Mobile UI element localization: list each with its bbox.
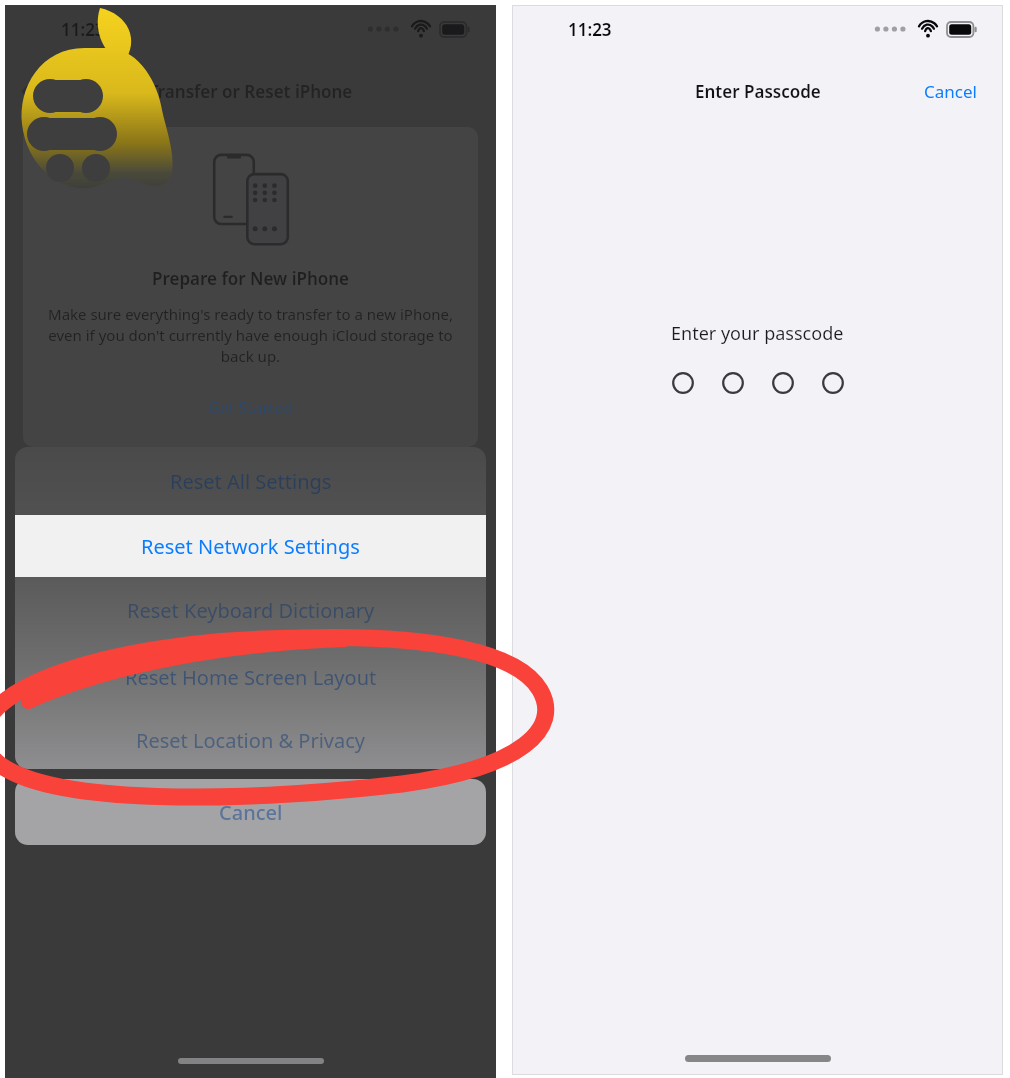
button[interactable]: Prepare for New iPhone <box>23 127 478 447</box>
staticText: Make sure everything's ready to transfer… <box>47 304 454 367</box>
staticText: Cancel <box>219 799 283 826</box>
staticText: Reset Home Screen Layout <box>125 664 377 691</box>
staticText: Reset Network Settings <box>141 533 360 560</box>
staticText: Cancel <box>924 80 977 103</box>
staticText: 11:23 <box>61 18 105 41</box>
staticText: General <box>40 80 103 103</box>
button[interactable]: Back to General <box>19 74 107 109</box>
staticText: Prepare for New iPhone <box>152 267 350 290</box>
button[interactable]: Reset Keyboard Dictionary <box>15 577 486 644</box>
button[interactable]: Reset Network Settings <box>15 515 486 577</box>
staticText: Enter your passcode <box>671 321 844 346</box>
button[interactable]: Cancel <box>920 74 981 109</box>
staticText: Reset Location & Privacy <box>136 727 365 754</box>
staticText: Reset Keyboard Dictionary <box>127 597 375 624</box>
button[interactable]: Reset All Settings <box>15 447 486 515</box>
button[interactable]: Get Started <box>208 397 294 419</box>
button[interactable]: Reset Home Screen Layout <box>15 644 486 711</box>
button[interactable]: Reset Location & Privacy <box>15 711 486 769</box>
staticText: Reset All Settings <box>170 468 332 495</box>
staticText: Transfer or Reset iPhone <box>149 80 353 103</box>
staticText: Enter Passcode <box>695 80 821 103</box>
staticText: 11:23 <box>568 18 612 41</box>
button[interactable]: Cancel <box>15 779 486 845</box>
